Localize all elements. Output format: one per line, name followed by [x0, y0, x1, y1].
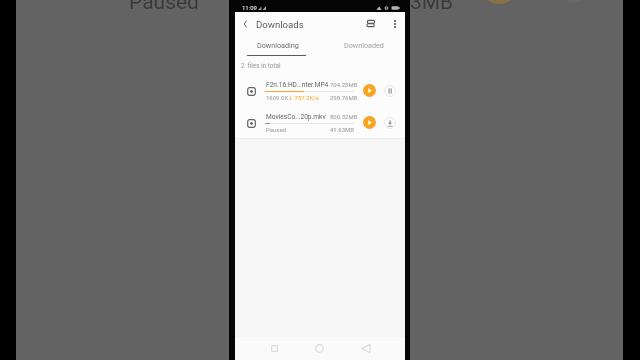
button[interactable]: Pause download — [384, 85, 396, 97]
button[interactable]: Recent apps — [262, 337, 286, 360]
button[interactable]: F2n.16.HD...nter.MP4 — [235, 79, 405, 108]
staticText: Downloaded — [344, 41, 384, 49]
staticText: Downloading — [257, 41, 299, 49]
button[interactable]: Home — [307, 337, 331, 360]
staticText: 298.76MB — [330, 94, 358, 101]
staticText: 800.32MB — [330, 113, 358, 120]
button[interactable]: MoviesCo...20p.mkv — [235, 111, 405, 140]
staticText: 41.63MB — [330, 126, 355, 133]
staticText: 11:09 — [242, 4, 257, 11]
staticText: Downloads — [256, 19, 304, 30]
button[interactable]: More options — [386, 15, 404, 33]
staticText: Paused — [129, 0, 199, 15]
button[interactable]: Resume download — [384, 117, 396, 129]
button[interactable]: Back — [236, 15, 254, 33]
button[interactable]: Play — [363, 84, 376, 97]
button[interactable]: Back — [354, 337, 378, 360]
button[interactable]: Select files — [362, 14, 380, 32]
button[interactable]: Downloaded — [322, 35, 405, 55]
staticText: 41.63MB — [369, 0, 454, 15]
staticText: 1609.0K — [266, 94, 289, 101]
staticText: Paused — [266, 126, 286, 133]
button[interactable]: Play — [363, 116, 376, 129]
staticText: F2n.16.HD...nter.MP4 — [266, 81, 329, 89]
button[interactable]: Downloading — [236, 35, 319, 55]
staticText: 2 files in total — [241, 62, 281, 70]
staticText: ↓ 757.2K/s — [288, 94, 319, 101]
staticText: 704.28MB — [330, 81, 358, 88]
staticText: MoviesCo...20p.mkv — [266, 113, 326, 121]
